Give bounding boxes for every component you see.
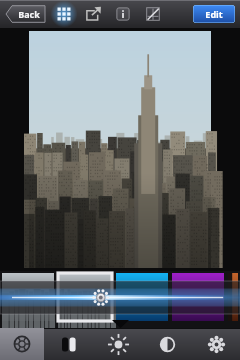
button[interactable]: Contrast — [152, 329, 182, 359]
button[interactable] — [172, 273, 224, 321]
staticText: Edit — [205, 8, 223, 20]
button[interactable]: Intensity slider — [0, 281, 240, 314]
button[interactable]: Settings — [201, 329, 231, 359]
button[interactable]: Grid view — [55, 5, 73, 23]
button[interactable]: Exposure — [54, 329, 84, 359]
staticText: Back — [18, 8, 40, 20]
button[interactable]: Info — [114, 5, 132, 23]
button[interactable] — [116, 273, 168, 321]
button[interactable]: Edit — [193, 5, 235, 23]
button[interactable]: Brightness — [103, 329, 133, 359]
button[interactable] — [228, 273, 238, 321]
button[interactable]: Back — [5, 5, 47, 23]
button[interactable] — [2, 273, 54, 321]
button[interactable]: Adjustments — [144, 5, 162, 23]
button[interactable] — [29, 31, 211, 268]
button[interactable] — [58, 273, 112, 321]
button[interactable]: Share — [84, 5, 102, 23]
button[interactable]: Effects — [0, 328, 44, 360]
